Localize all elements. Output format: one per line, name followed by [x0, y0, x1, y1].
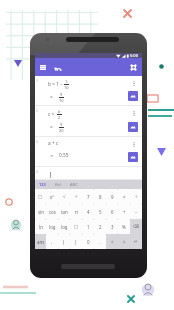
staticText: 2	[99, 224, 102, 230]
button[interactable]: 8	[94, 189, 106, 204]
button[interactable]: (	[58, 234, 70, 249]
button[interactable]: )	[70, 234, 82, 249]
staticText: cos	[49, 209, 56, 215]
button[interactable]: Show graph	[128, 91, 138, 101]
button[interactable]: 0	[82, 234, 94, 249]
staticText: 0.55	[59, 152, 69, 159]
staticText: ans	[37, 239, 45, 245]
button[interactable]: ABC	[70, 182, 78, 187]
staticText: x²	[50, 194, 54, 200]
button[interactable]: More options	[130, 79, 138, 87]
button[interactable]: <	[106, 234, 118, 249]
staticText: ≈	[50, 153, 54, 158]
staticText: 123	[39, 182, 46, 187]
button[interactable]: log	[46, 219, 58, 234]
button[interactable]: Show graph	[128, 122, 138, 132]
button[interactable]: 3	[106, 219, 118, 234]
staticText: log	[61, 224, 68, 230]
staticText: %	[122, 224, 126, 230]
button[interactable]: ln	[35, 219, 46, 234]
staticText: ln	[39, 224, 43, 230]
button[interactable]: ⌫	[130, 219, 142, 234]
button[interactable]: ans	[35, 234, 46, 249]
button[interactable]: .	[94, 234, 106, 249]
staticText: π	[75, 209, 78, 215]
button[interactable]: log	[58, 219, 70, 234]
staticText: 10	[64, 85, 69, 90]
staticText: 6	[111, 209, 114, 215]
staticText: b	[58, 109, 61, 114]
staticText: c =	[48, 111, 55, 118]
staticText: f(x)	[55, 182, 61, 187]
button[interactable]: ÷	[70, 189, 82, 204]
button[interactable]: Show graph	[128, 152, 138, 162]
staticText: 9	[60, 92, 63, 97]
button[interactable]: Navigation menu	[37, 62, 48, 73]
staticText: 8	[99, 194, 102, 200]
button[interactable]: 9	[106, 189, 118, 204]
staticText: (	[63, 239, 65, 245]
button[interactable]: 7	[82, 189, 94, 204]
button[interactable]: ↵	[130, 234, 142, 249]
staticText: 2	[58, 115, 61, 120]
staticText: 20	[59, 128, 64, 133]
staticText: 5	[99, 209, 102, 215]
button[interactable]: 1	[82, 219, 94, 234]
staticText: ↵	[134, 239, 138, 244]
button[interactable]: √	[58, 189, 70, 204]
staticText: 3	[36, 140, 38, 144]
button[interactable]: π	[70, 204, 82, 219]
staticText: +	[123, 209, 126, 215]
staticText: ⌫	[133, 224, 140, 229]
button[interactable]: 2	[94, 219, 106, 234]
staticText: 0	[87, 239, 90, 245]
staticText: tan	[61, 209, 68, 215]
button[interactable]: %	[118, 219, 130, 234]
staticText: −	[135, 209, 138, 215]
button[interactable]: ×	[118, 189, 130, 204]
button[interactable]: tan	[58, 204, 70, 219]
staticText: 1	[65, 79, 68, 84]
staticText: log	[49, 224, 56, 230]
staticText: ÷	[135, 194, 138, 200]
staticText: =	[50, 94, 53, 101]
button[interactable]: ,	[46, 234, 58, 249]
staticText: 5:00	[130, 53, 138, 58]
staticText: 9	[60, 122, 63, 127]
button[interactable]: sin	[35, 204, 46, 219]
staticText: sin	[38, 209, 44, 215]
staticText: 10	[59, 98, 64, 103]
button[interactable]: Undo	[52, 62, 63, 73]
button[interactable]: +	[118, 204, 130, 219]
staticText: √	[63, 194, 66, 199]
staticText: 9	[111, 194, 114, 200]
button[interactable]: ÷	[130, 189, 142, 204]
staticText: 4	[87, 209, 90, 215]
button[interactable]: More options	[130, 109, 138, 117]
button[interactable]: Settings	[128, 62, 139, 73]
button[interactable]: cos	[46, 204, 58, 219]
button[interactable]: 5	[94, 204, 106, 219]
staticText: 1	[36, 79, 38, 83]
staticText: )	[75, 239, 77, 245]
staticText: ÷	[75, 194, 78, 200]
staticText: b = 1 −	[48, 81, 63, 88]
staticText: 2	[36, 109, 38, 113]
button[interactable]: 6	[106, 204, 118, 219]
staticText: ,	[51, 239, 53, 245]
staticText: ×	[123, 194, 126, 200]
button[interactable]: f(x)	[55, 182, 61, 187]
button[interactable]: □	[35, 189, 46, 204]
button[interactable]: □	[70, 219, 82, 234]
staticText: 3	[111, 224, 114, 230]
button[interactable]: x²	[46, 189, 58, 204]
button[interactable]: 123	[39, 182, 46, 187]
staticText: .	[99, 239, 101, 245]
button[interactable]: More options	[130, 140, 138, 148]
button[interactable]: 4	[82, 204, 94, 219]
staticText: 7	[87, 194, 90, 200]
button[interactable]: −	[130, 204, 142, 219]
staticText: 4	[36, 170, 38, 174]
button[interactable]: >	[118, 234, 130, 249]
staticText: <	[111, 239, 114, 245]
